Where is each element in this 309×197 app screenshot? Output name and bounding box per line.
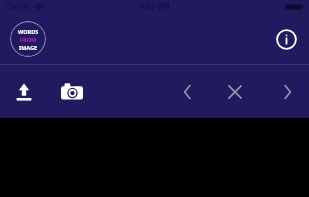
button[interactable]: Take photo xyxy=(56,76,88,108)
staticText: IMAGE xyxy=(19,44,38,51)
button[interactable]: Words From Image logo xyxy=(10,21,46,57)
button[interactable]: Upload image xyxy=(8,76,40,108)
button[interactable]: Information xyxy=(273,26,299,52)
button[interactable]: Previous xyxy=(173,78,201,106)
button[interactable]: Next xyxy=(273,78,301,106)
staticText: Carrier xyxy=(5,1,32,12)
staticText: WORDS xyxy=(18,28,39,35)
button[interactable]: Clear xyxy=(221,78,249,106)
staticText: FROM xyxy=(20,36,37,43)
staticText: 9:52 PM xyxy=(139,1,170,12)
